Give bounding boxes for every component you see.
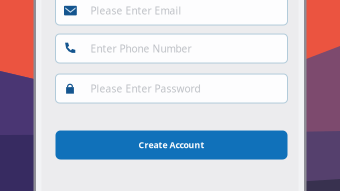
staticText: Please Enter Email: [90, 4, 181, 17]
button[interactable]: Create Account: [55, 130, 287, 159]
staticText: Enter Phone Number: [90, 42, 191, 55]
staticText: Please Enter Password: [90, 82, 200, 95]
staticText: Create Account: [138, 139, 204, 151]
